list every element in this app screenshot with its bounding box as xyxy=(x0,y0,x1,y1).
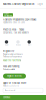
button[interactable]: Review xyxy=(15,40,20,46)
staticText: Subsidy available xyxy=(3,68,15,70)
staticText: Register interest xyxy=(7,75,22,77)
button[interactable]: Read the full criteria xyxy=(0,58,46,62)
staticText: Applications close 30 June xyxy=(3,21,25,24)
staticText: Advisory Programme 2024 intake xyxy=(3,18,36,21)
button[interactable]: Continue xyxy=(0,95,46,100)
staticText: Corporate, tax and advisory xyxy=(3,32,29,34)
staticText: Fees and funding xyxy=(3,65,19,68)
button[interactable]: Business Advisory Registration xyxy=(3,2,34,6)
staticText: Start xyxy=(28,44,31,46)
staticText: We'll be in touch shortly xyxy=(3,85,19,87)
staticText: Registered practitioners xyxy=(3,53,23,55)
staticText: Name / email xyxy=(5,89,15,91)
staticText: Apply or find out more xyxy=(3,82,26,84)
staticText: Continue xyxy=(3,96,10,99)
staticText: Read the full criteria xyxy=(3,59,21,62)
staticText: Business Advisory Registration xyxy=(3,3,34,5)
staticText: Log in xyxy=(37,3,42,5)
button[interactable]: Apply xyxy=(4,40,8,46)
staticText: Eligibility xyxy=(3,50,14,52)
staticText: Open Enrolment xyxy=(3,12,12,17)
button[interactable]: Log in xyxy=(37,2,43,6)
staticText: Two years of experience xyxy=(3,55,22,58)
staticText: Practice Area · Types xyxy=(3,28,24,31)
staticText: Apply xyxy=(4,44,8,46)
staticText: Review xyxy=(15,44,20,46)
button[interactable]: Open Enrolment xyxy=(3,13,13,17)
button[interactable]: Register interest xyxy=(3,74,26,79)
button[interactable]: Start xyxy=(27,40,31,46)
button[interactable]: Name / email xyxy=(3,88,43,93)
